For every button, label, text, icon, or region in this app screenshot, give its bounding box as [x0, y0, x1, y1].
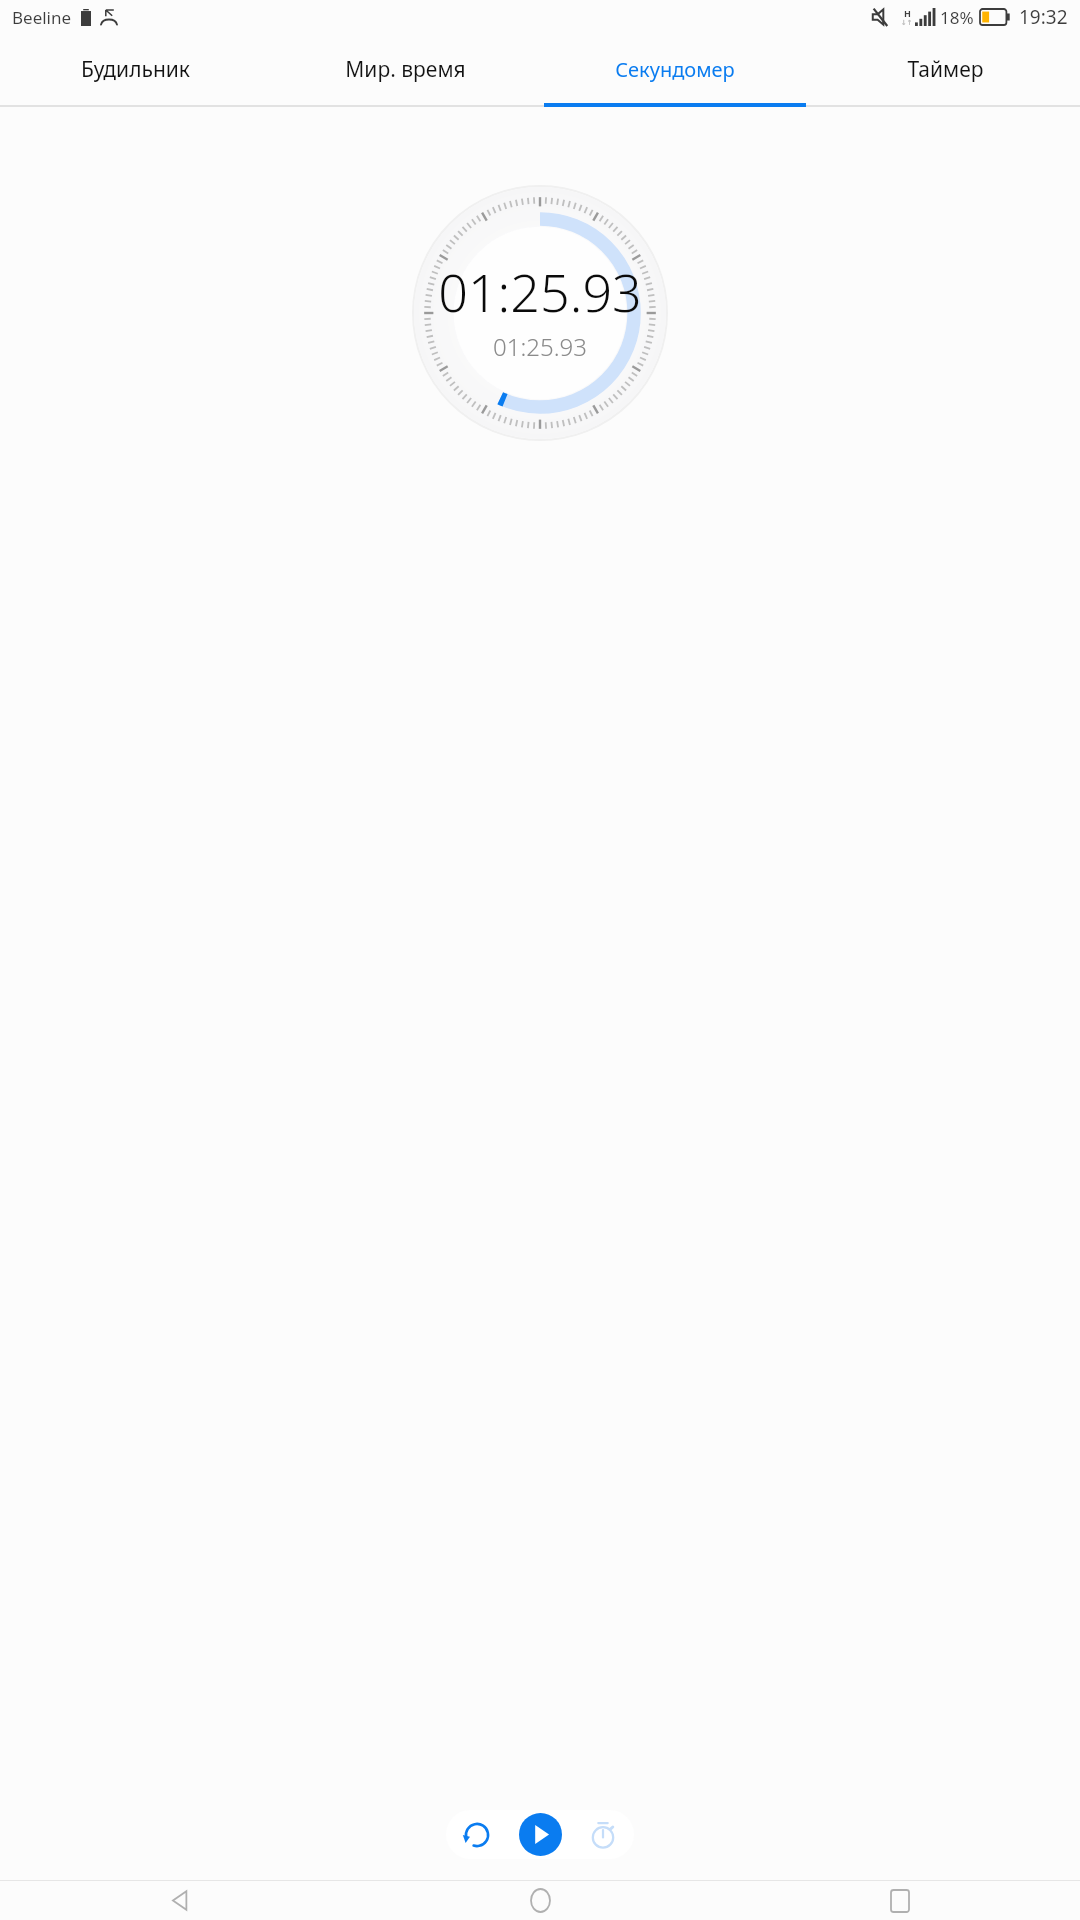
staticText: ↓↑: [901, 19, 913, 27]
button[interactable]: Таймер: [810, 34, 1080, 104]
button[interactable]: Recent apps: [720, 1881, 1080, 1920]
staticText: Таймер: [907, 55, 984, 84]
button[interactable]: Lap: [571, 1810, 634, 1859]
button[interactable]: Back: [0, 1881, 360, 1920]
button[interactable]: Reset: [446, 1810, 508, 1859]
button[interactable]: Home: [360, 1881, 720, 1920]
staticText: 01:25.93: [493, 330, 587, 363]
staticText: Секундомер: [615, 56, 735, 83]
button[interactable]: Секундомер: [540, 34, 810, 104]
staticText: H: [904, 7, 911, 19]
button[interactable]: Будильник: [0, 34, 270, 104]
staticText: 01:25.93: [438, 256, 642, 327]
staticText: 19:32: [1019, 4, 1068, 30]
staticText: 18%: [940, 6, 974, 29]
button[interactable]: Start: [519, 1813, 562, 1856]
staticText: Мир. время: [345, 55, 466, 84]
button[interactable]: Мир. время: [270, 34, 540, 104]
staticText: Будильник: [81, 55, 190, 84]
staticText: Beeline: [12, 6, 72, 29]
